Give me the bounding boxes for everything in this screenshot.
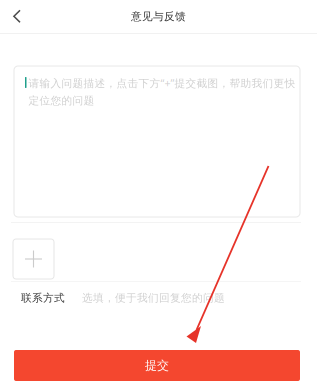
- button[interactable]: 联系方式: [0, 286, 317, 310]
- staticText: 联系方式: [21, 291, 65, 304]
- button[interactable]: Back: [0, 0, 34, 33]
- staticText: 请输入问题描述，点击下方“+”提交截图，帮助我们更快定位您的问题: [28, 76, 295, 107]
- button[interactable]: Add screenshot: [13, 239, 54, 279]
- staticText: 意见与反馈: [131, 10, 186, 23]
- staticText: 提交: [145, 358, 169, 373]
- staticText: 选填，便于我们回复您的问题: [82, 291, 225, 304]
- button[interactable]: 提交: [14, 350, 300, 381]
